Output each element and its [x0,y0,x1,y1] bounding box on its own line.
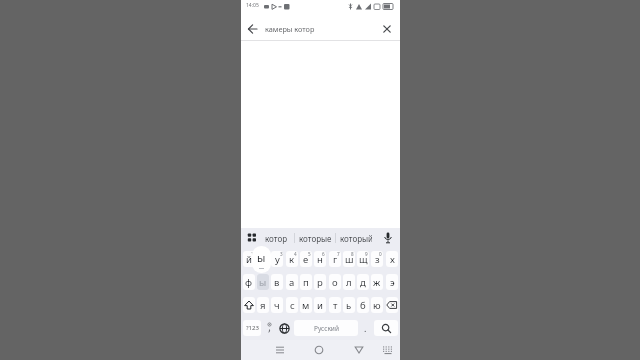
staticText: э [390,276,395,289]
staticText: ш [345,253,354,266]
staticText: е [303,253,309,266]
button[interactable]: р [314,274,326,290]
button[interactable]: с [286,297,298,313]
staticText: и [317,299,323,312]
button[interactable] [263,320,276,336]
button[interactable]: . [360,320,371,336]
staticText: б [360,299,366,312]
staticText: щ [359,253,368,266]
staticText: а [289,276,295,289]
button[interactable] [243,297,255,313]
button[interactable] [246,231,260,245]
staticText: ю [373,299,381,312]
button[interactable]: э [386,274,398,290]
button[interactable]: м [300,297,312,313]
staticText: г [333,253,338,266]
staticText: д [360,276,366,289]
button[interactable]: котор [265,228,287,248]
staticText: о [332,276,338,289]
button[interactable]: з [371,251,383,267]
button[interactable] [374,320,398,336]
button[interactable]: д [357,274,369,290]
staticText: ч [274,299,280,312]
staticText: й [246,253,252,266]
button[interactable]: б [357,297,369,313]
button[interactable]: т [329,297,341,313]
button[interactable]: который [340,228,372,248]
staticText: 3 [280,251,283,257]
staticText: ?123 [246,324,259,332]
button[interactable]: ю [371,297,383,313]
button[interactable]: Русский [294,320,358,336]
button[interactable]: я [257,297,269,313]
button[interactable]: о [329,274,341,290]
button[interactable]: ц [257,251,269,267]
button[interactable]: к [286,251,298,267]
button[interactable]: п [300,274,312,290]
button[interactable] [272,342,288,358]
button[interactable] [386,297,398,313]
staticText: 0 [379,251,382,257]
staticText: 6 [322,251,325,257]
staticText: з [375,253,380,266]
button[interactable] [380,230,396,246]
staticText: 4 [294,251,297,257]
staticText: м [302,299,310,312]
staticText: котор [265,233,287,244]
button[interactable]: н [314,251,326,267]
button[interactable]: и [314,297,326,313]
button[interactable]: е [300,251,312,267]
button[interactable]: щ [357,251,369,267]
staticText: ж [373,276,381,289]
staticText: п [303,276,309,289]
button[interactable]: ?123 [243,320,261,336]
button[interactable]: а [286,274,298,290]
staticText: т [333,299,338,312]
button[interactable]: г [329,251,341,267]
button[interactable] [381,343,395,357]
staticText: 9 [365,251,368,257]
staticText: 14:05 [246,2,259,9]
button[interactable] [379,21,395,37]
button[interactable]: х [386,251,398,267]
staticText: 7 [337,251,340,257]
staticText: . [364,322,367,334]
button[interactable]: в [271,274,283,290]
button[interactable]: которые [299,228,331,248]
staticText: в [274,276,280,289]
button[interactable]: ш [343,251,355,267]
staticText: Русский [314,324,339,333]
staticText: л [346,276,352,289]
staticText: 1 [251,251,254,257]
staticText: к [289,253,295,266]
button[interactable]: ф [243,274,255,290]
button[interactable] [351,342,367,358]
staticText: камеры котор [265,24,315,34]
staticText: р [317,276,323,289]
button[interactable]: у [271,251,283,267]
staticText: 5 [308,251,311,257]
staticText: ы [259,276,267,289]
staticText: ф [245,276,253,289]
button[interactable]: й [243,251,255,267]
button[interactable]: л [343,274,355,290]
button[interactable] [311,342,327,358]
button[interactable]: ь [343,297,355,313]
staticText: с [290,299,295,312]
staticText: который [340,233,372,244]
button[interactable]: ы [257,274,269,290]
staticText: ь [346,299,352,312]
button[interactable]: ч [271,297,283,313]
button[interactable] [245,21,261,37]
button[interactable]: ж [371,274,383,290]
staticText: х [390,253,395,266]
staticText: н [317,253,323,266]
staticText: я [260,299,266,312]
staticText: ц [260,253,266,266]
staticText: которые [299,233,331,244]
button[interactable] [277,320,292,336]
staticText: ы [257,250,266,265]
staticText: у [275,253,280,266]
staticText: 8 [351,251,354,257]
